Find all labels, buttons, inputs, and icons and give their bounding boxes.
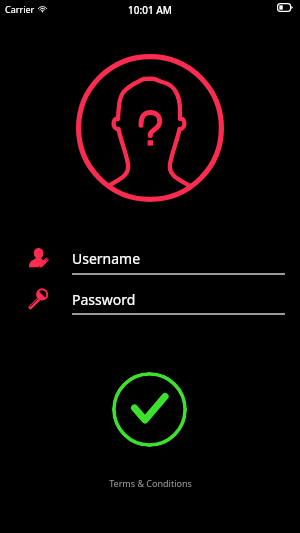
- staticText: 10:01 AM: [128, 3, 172, 17]
- staticText: Carrier: [5, 3, 35, 15]
- staticText: Password: [72, 290, 136, 309]
- button[interactable]: Sign in: [112, 372, 187, 447]
- button[interactable]: Terms & Conditions: [109, 477, 192, 489]
- staticText: Username: [72, 249, 141, 268]
